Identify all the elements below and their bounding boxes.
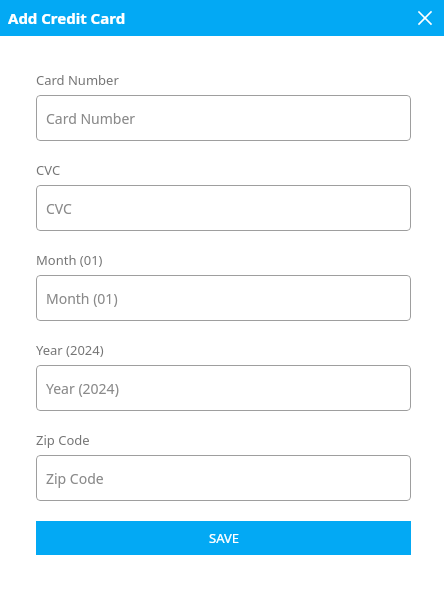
staticText: CVC — [46, 199, 72, 218]
staticText: CVC — [36, 161, 61, 179]
staticText: Year (2024) — [36, 341, 104, 359]
staticText: Year (2024) — [46, 379, 119, 398]
staticText: Month (01) — [36, 251, 103, 269]
button[interactable]: Close — [412, 5, 438, 31]
button[interactable]: Card Number — [36, 95, 411, 141]
staticText: Card Number — [36, 71, 119, 89]
staticText: Zip Code — [36, 431, 90, 449]
button[interactable]: Month (01) — [36, 275, 411, 321]
staticText: SAVE — [209, 529, 239, 547]
staticText: Month (01) — [46, 289, 118, 308]
button[interactable]: Zip Code — [36, 455, 411, 501]
button[interactable]: SAVE — [36, 521, 411, 555]
button[interactable]: Year (2024) — [36, 365, 411, 411]
staticText: Card Number — [46, 109, 136, 128]
staticText: Zip Code — [46, 469, 104, 488]
button[interactable]: CVC — [36, 185, 411, 231]
staticText: Add Credit Card — [8, 8, 126, 28]
